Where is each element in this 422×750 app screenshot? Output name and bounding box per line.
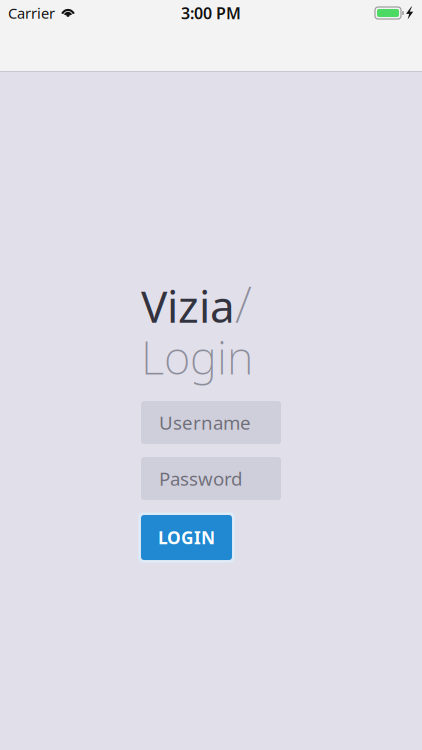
staticText: Carrier <box>8 3 55 23</box>
button[interactable]: Username <box>141 401 281 444</box>
staticText: LOGIN <box>158 526 215 549</box>
staticText: Username <box>159 410 251 435</box>
staticText: 3:00 PM <box>181 2 241 24</box>
staticText: / <box>235 269 252 337</box>
button[interactable]: LOGIN <box>141 515 232 560</box>
staticText: Login <box>141 327 253 387</box>
button[interactable]: Password <box>141 457 281 500</box>
staticText: Password <box>159 466 242 491</box>
staticText: Vizia <box>141 276 235 335</box>
